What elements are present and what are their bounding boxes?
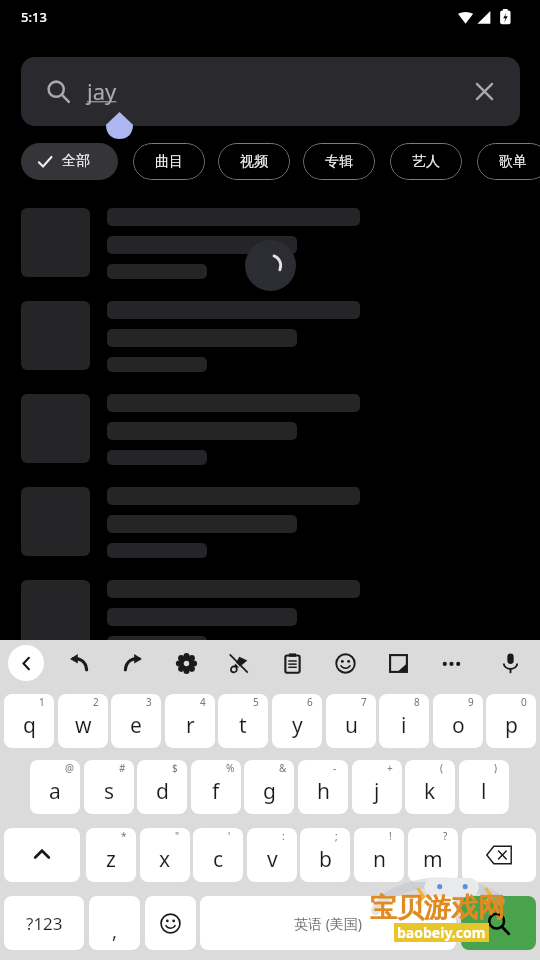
button[interactable]: z (86, 828, 136, 882)
staticText: 9 (468, 695, 474, 709)
staticText: v (267, 845, 278, 874)
other: Search (47, 80, 70, 103)
button[interactable]: Shift (4, 828, 80, 882)
staticText: ' (228, 829, 231, 843)
button[interactable]: , (89, 896, 140, 950)
button[interactable]: Search (21, 57, 520, 126)
staticText: 4 (200, 695, 206, 709)
staticText: b (319, 845, 332, 874)
button[interactable]: r (165, 694, 215, 748)
button[interactable]: s (84, 760, 134, 814)
staticText: k (424, 777, 436, 806)
staticText: e (130, 711, 142, 740)
staticText: # (119, 761, 126, 775)
button[interactable]: Handwriting (380, 645, 416, 681)
staticText: 7 (361, 695, 367, 709)
staticText: y (292, 711, 303, 740)
button[interactable]: 艺人 (390, 143, 462, 180)
staticText: 0 (521, 695, 527, 709)
staticText: j (374, 777, 380, 806)
staticText: $ (172, 761, 178, 775)
button[interactable]: j (352, 760, 402, 814)
staticText: 专辑 (325, 153, 353, 171)
button[interactable]: m (408, 828, 458, 882)
staticText: d (156, 777, 169, 806)
button[interactable]: a (30, 760, 80, 814)
button[interactable]: t (218, 694, 268, 748)
button[interactable]: i (379, 694, 429, 748)
button[interactable]: 专辑 (303, 143, 375, 180)
staticText: 曲目 (155, 153, 183, 171)
staticText: o (452, 711, 465, 740)
button[interactable]: k (405, 760, 455, 814)
staticText: ?123 (26, 912, 63, 935)
staticText: g (263, 777, 276, 806)
button[interactable]: Backspace (462, 828, 536, 882)
button[interactable]: e (111, 694, 161, 748)
button[interactable]: h (298, 760, 348, 814)
staticText: 2 (93, 695, 99, 709)
button[interactable]: g (244, 760, 294, 814)
button[interactable]: 英语 (美国) (200, 896, 456, 950)
staticText: jay (87, 76, 117, 106)
button[interactable]: Settings (168, 645, 204, 681)
button[interactable]: Stickers off (220, 645, 256, 681)
button[interactable]: b (300, 828, 350, 882)
staticText: 5 (253, 695, 259, 709)
button[interactable]: d (137, 760, 187, 814)
staticText: , (112, 918, 118, 944)
button[interactable]: w (58, 694, 108, 748)
staticText: % (226, 761, 235, 775)
staticText: ? (443, 829, 448, 843)
button[interactable]: Clear (473, 80, 496, 103)
button[interactable]: c (193, 828, 243, 882)
button[interactable]: y (272, 694, 322, 748)
staticText: * (121, 829, 127, 843)
button[interactable]: v (247, 828, 297, 882)
staticText: z (106, 845, 116, 874)
button[interactable]: l (459, 760, 509, 814)
button[interactable]: u (326, 694, 376, 748)
staticText: 5:13 (21, 8, 47, 26)
staticText: 艺人 (412, 153, 440, 171)
button[interactable]: ?123 (4, 896, 84, 950)
button[interactable]: Voice input (492, 645, 528, 681)
button[interactable]: Emoji (327, 645, 363, 681)
staticText: 全部 (62, 152, 90, 170)
staticText: & (279, 761, 287, 775)
button[interactable]: x (140, 828, 190, 882)
staticText: ( (440, 761, 443, 775)
staticText: u (345, 711, 358, 740)
staticText: 8 (414, 695, 420, 709)
staticText: - (333, 761, 337, 775)
staticText: r (186, 711, 195, 740)
staticText: " (175, 829, 180, 843)
button[interactable]: Search (461, 896, 536, 950)
button[interactable]: Redo (114, 645, 150, 681)
button[interactable]: Emoji (145, 896, 196, 950)
button[interactable]: n (354, 828, 404, 882)
staticText: + (387, 761, 393, 775)
staticText: 宝贝游戏网 (370, 891, 505, 925)
button[interactable]: More options (433, 645, 469, 681)
staticText: 歌单 (499, 153, 527, 171)
staticText: 视频 (240, 153, 268, 171)
button[interactable]: f (191, 760, 241, 814)
staticText: s (104, 777, 115, 806)
button[interactable]: 歌单 (477, 143, 540, 180)
button[interactable]: Clipboard (274, 645, 310, 681)
button[interactable]: p (486, 694, 536, 748)
button[interactable]: Undo (61, 645, 97, 681)
button[interactable]: 曲目 (133, 143, 205, 180)
staticText: 3 (146, 695, 152, 709)
button[interactable]: q (4, 694, 54, 748)
button[interactable]: Back (8, 645, 44, 681)
button[interactable]: 全部 (21, 143, 118, 180)
button[interactable]: 视频 (218, 143, 290, 180)
staticText: @ (65, 761, 74, 775)
staticText: 1 (39, 695, 45, 709)
button[interactable]: o (433, 694, 483, 748)
staticText: baobeiy.com (397, 923, 486, 942)
staticText: f (212, 777, 220, 806)
staticText: i (401, 711, 407, 740)
